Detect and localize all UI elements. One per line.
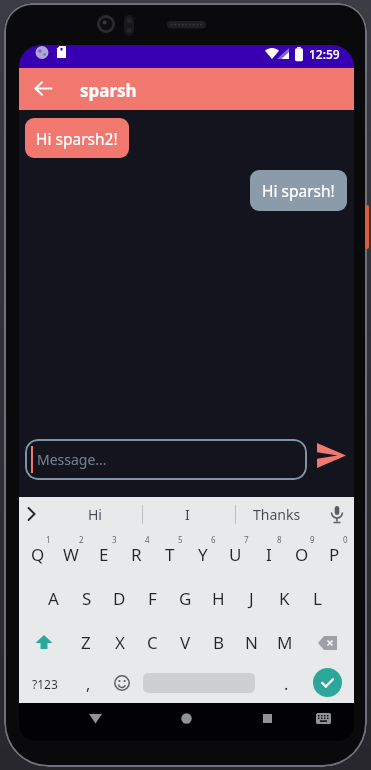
staticText: 12:59 [309, 46, 340, 62]
staticText: E [99, 543, 109, 566]
staticText: C [147, 631, 158, 654]
button[interactable]: S [70, 576, 103, 621]
button[interactable] [89, 714, 102, 724]
staticText: X [115, 631, 125, 654]
button[interactable] [35, 635, 53, 650]
button[interactable]: M [268, 621, 301, 664]
button[interactable] [316, 713, 331, 724]
staticText: L [313, 587, 322, 610]
button[interactable] [313, 668, 342, 697]
button[interactable]: K [268, 576, 301, 621]
staticText: Message... [37, 450, 107, 469]
button[interactable]: , [77, 664, 99, 703]
button[interactable]: Hi sparsh! [250, 170, 347, 211]
staticText: ?123 [32, 676, 58, 692]
button[interactable]: F [136, 576, 169, 621]
button[interactable]: V [169, 621, 202, 664]
staticText: Hi [88, 505, 102, 524]
staticText: Thanks [253, 505, 301, 524]
staticText: 0 [343, 534, 348, 545]
button[interactable] [317, 442, 346, 469]
button[interactable]: ?123 [27, 664, 63, 703]
button[interactable] [114, 675, 130, 691]
staticText: 3 [112, 534, 117, 545]
staticText: I [185, 505, 190, 524]
staticText: O [295, 543, 309, 566]
button[interactable]: G [169, 576, 202, 621]
staticText: I [266, 543, 272, 566]
staticText: Hi sparsh! [262, 180, 335, 201]
staticText: U [229, 543, 242, 566]
button[interactable] [181, 713, 192, 724]
staticText: 2 [79, 534, 84, 545]
staticText: V [180, 631, 191, 654]
button[interactable]: E [87, 532, 120, 576]
staticText: 9 [310, 534, 315, 545]
button[interactable]: W [54, 532, 87, 576]
button[interactable]: B [202, 621, 235, 664]
button[interactable]: I [151, 497, 223, 532]
staticText: F [148, 587, 157, 610]
staticText: S [82, 587, 92, 610]
button[interactable]: J [235, 576, 268, 621]
staticText: A [48, 587, 59, 610]
staticText: T [165, 543, 175, 566]
button[interactable]: U [219, 532, 252, 576]
button[interactable]: O [285, 532, 318, 576]
staticText: W [63, 543, 79, 566]
button[interactable]: Hi sparsh2! [25, 118, 129, 158]
staticText: 6 [211, 534, 216, 545]
staticText: K [279, 587, 290, 610]
button[interactable]: L [301, 576, 334, 621]
button[interactable]: H [202, 576, 235, 621]
staticText: , [86, 673, 91, 695]
staticText: D [113, 587, 126, 610]
staticText: Hi sparsh2! [36, 128, 118, 149]
staticText: N [245, 631, 258, 654]
button[interactable]: Q [21, 532, 54, 576]
staticText: G [179, 587, 192, 610]
button[interactable] [330, 506, 344, 524]
button[interactable]: D [103, 576, 136, 621]
button[interactable]: R [120, 532, 153, 576]
staticText: P [329, 543, 340, 566]
button[interactable] [35, 81, 52, 96]
button[interactable]: Message... [25, 439, 307, 480]
button[interactable]: T [153, 532, 186, 576]
staticText: Y [198, 543, 208, 566]
button[interactable]: P [318, 532, 351, 576]
staticText: 4 [145, 534, 150, 545]
staticText: M [277, 631, 293, 654]
staticText: Z [81, 631, 91, 654]
button[interactable]: I [252, 532, 285, 576]
staticText: J [249, 587, 254, 610]
staticText: H [212, 587, 225, 610]
button[interactable]: C [136, 621, 169, 664]
button[interactable]: Thanks [241, 497, 313, 532]
staticText: R [131, 543, 142, 566]
staticText: B [213, 631, 225, 654]
button[interactable]: Z [69, 621, 103, 664]
staticText: Q [31, 543, 45, 566]
button[interactable] [27, 507, 36, 521]
button[interactable]: Hi [59, 497, 131, 532]
button[interactable]: Y [186, 532, 219, 576]
button[interactable]: . [275, 664, 297, 703]
staticText: sparsh [80, 79, 137, 102]
staticText: 1 [46, 534, 51, 545]
button[interactable] [318, 636, 337, 650]
staticText: . [284, 673, 289, 695]
button[interactable]: A [36, 576, 70, 621]
staticText: 8 [277, 534, 282, 545]
button[interactable]: N [235, 621, 268, 664]
staticText: 7 [244, 534, 249, 545]
staticText: 5 [178, 534, 183, 545]
button[interactable]: X [103, 621, 136, 664]
